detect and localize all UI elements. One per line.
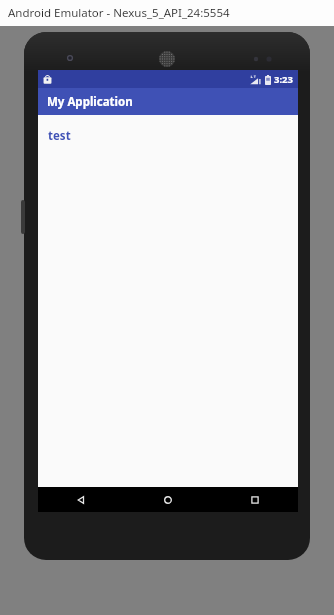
- staticText: My Application: [47, 94, 133, 110]
- button[interactable]: Recent apps: [211, 487, 298, 512]
- staticText: Android Emulator - Nexus_5_API_24:5554: [8, 5, 230, 21]
- staticText: 3:23: [274, 73, 293, 86]
- staticText: test: [48, 128, 71, 144]
- button[interactable]: My Application: [38, 88, 298, 115]
- button[interactable]: Back: [38, 487, 124, 512]
- button[interactable]: Home: [124, 487, 211, 512]
